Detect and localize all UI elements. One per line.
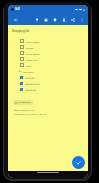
staticText: Coffee <box>26 46 34 49</box>
button[interactable]: Add item <box>8 68 88 74</box>
button[interactable]: Milk <box>8 62 88 68</box>
staticText: Green tea <box>26 58 38 61</box>
button[interactable]: Share <box>68 15 77 24</box>
staticText: No reminder <box>18 101 31 104</box>
staticText: Created Fri, Jul 19, 2019, 11:30 AM <box>14 113 46 116</box>
button[interactable]: Olive oil <box>8 74 88 80</box>
button[interactable]: More options <box>77 15 86 24</box>
button[interactable]: No reminder <box>13 100 33 105</box>
staticText: 9:41 <box>15 7 21 11</box>
staticText: Spaghetti <box>25 88 37 91</box>
button[interactable]: Green tea <box>8 56 88 62</box>
staticText: Orange juice <box>25 82 40 85</box>
button[interactable]: Label <box>50 15 59 24</box>
button[interactable]: Spaghetti <box>8 86 88 92</box>
button[interactable]: Chilli sauce <box>8 38 88 44</box>
button[interactable]: Add collaborator <box>59 15 68 24</box>
staticText: Add item <box>23 70 34 73</box>
staticText: Edited Today 9:41 AM <box>14 109 35 112</box>
button[interactable]: Archive <box>41 15 50 24</box>
button[interactable]: Coffee <box>8 44 88 50</box>
staticText: Olive oil <box>25 76 35 79</box>
staticText: Milk <box>26 64 31 67</box>
button[interactable]: Orange juice <box>8 80 88 86</box>
staticText: Shopping list <box>12 29 30 33</box>
button[interactable]: Done <box>72 156 85 169</box>
staticText: Chilli sauce <box>26 40 40 43</box>
staticText: Crisp bread <box>26 52 40 55</box>
button[interactable]: Pin note <box>32 15 41 24</box>
button[interactable]: Back <box>11 15 20 24</box>
button[interactable]: Crisp bread <box>8 50 88 56</box>
